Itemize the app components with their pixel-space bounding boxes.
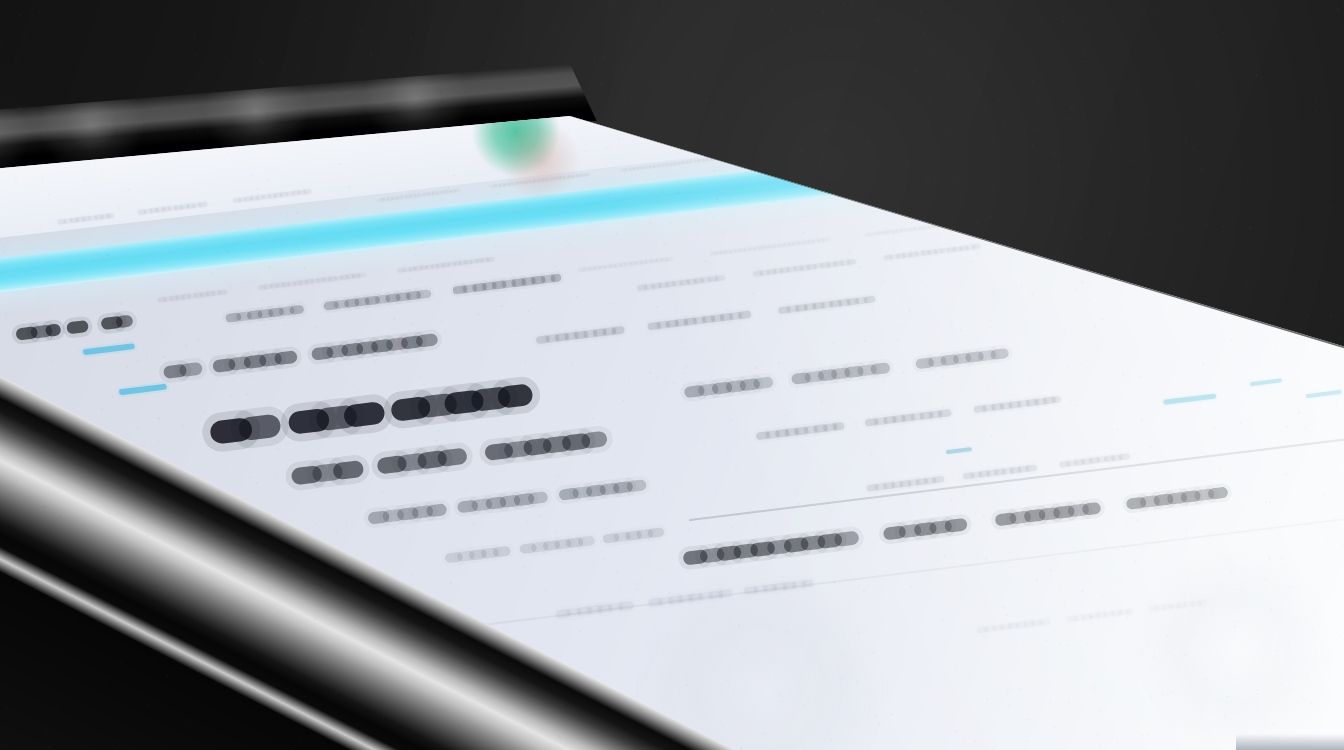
button[interactable]: Mobile app list screen bbox=[0, 0, 1344, 750]
button[interactable]: List item 1 bbox=[0, 300, 1000, 362]
button[interactable]: List item 2 bbox=[30, 362, 1090, 424]
button[interactable]: Account bbox=[470, 104, 580, 182]
button[interactable]: List item 4 bbox=[220, 486, 1340, 548]
button[interactable]: List item 5 bbox=[330, 548, 1340, 610]
button[interactable]: List item 3 bbox=[120, 424, 1220, 486]
button[interactable]: More bbox=[1140, 376, 1344, 420]
button[interactable]: App bar bbox=[0, 186, 820, 306]
